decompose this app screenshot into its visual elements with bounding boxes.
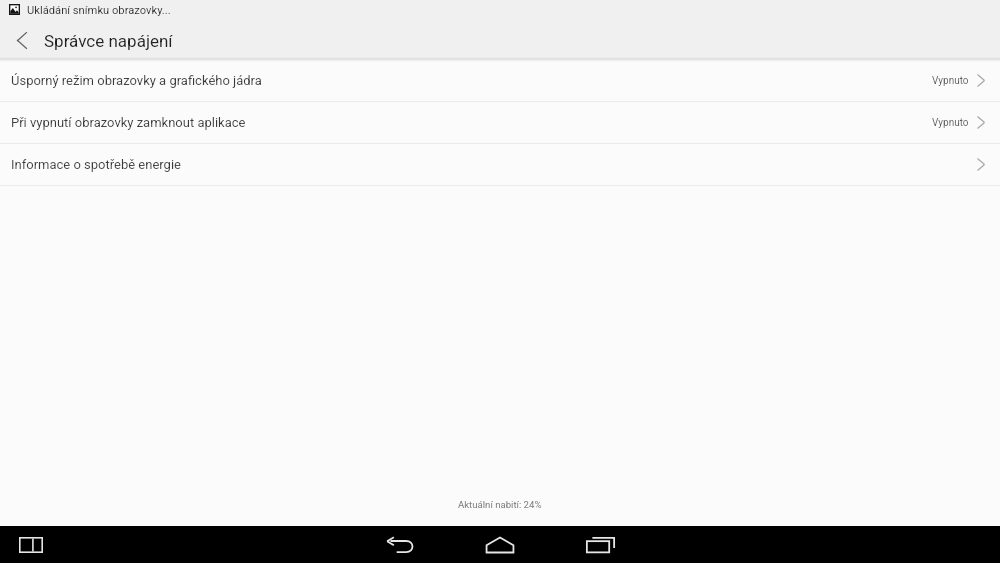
staticText: Aktuální nabití: 24% <box>458 499 542 510</box>
button[interactable]: Recent apps <box>570 526 630 563</box>
button[interactable]: Při vypnutí obrazovky zamknout aplikace <box>0 102 1000 144</box>
button[interactable]: Split screen <box>0 526 62 563</box>
staticText: Úsporný režim obrazovky a grafického jád… <box>11 73 262 88</box>
staticText: Vypnuto <box>932 117 969 129</box>
button[interactable]: Back <box>370 526 430 563</box>
button[interactable]: Home <box>470 526 530 563</box>
staticText: Vypnuto <box>932 75 969 87</box>
staticText: Správce napájení <box>44 31 173 51</box>
staticText: Informace o spotřebě energie <box>11 157 181 172</box>
staticText: Při vypnutí obrazovky zamknout aplikace <box>11 115 246 130</box>
staticText: Ukládání snímku obrazovky... <box>27 4 171 17</box>
button[interactable]: Navigate up <box>0 22 41 59</box>
button[interactable]: Úsporný režim obrazovky a grafického jád… <box>0 60 1000 102</box>
button[interactable]: Informace o spotřebě energie <box>0 144 1000 186</box>
